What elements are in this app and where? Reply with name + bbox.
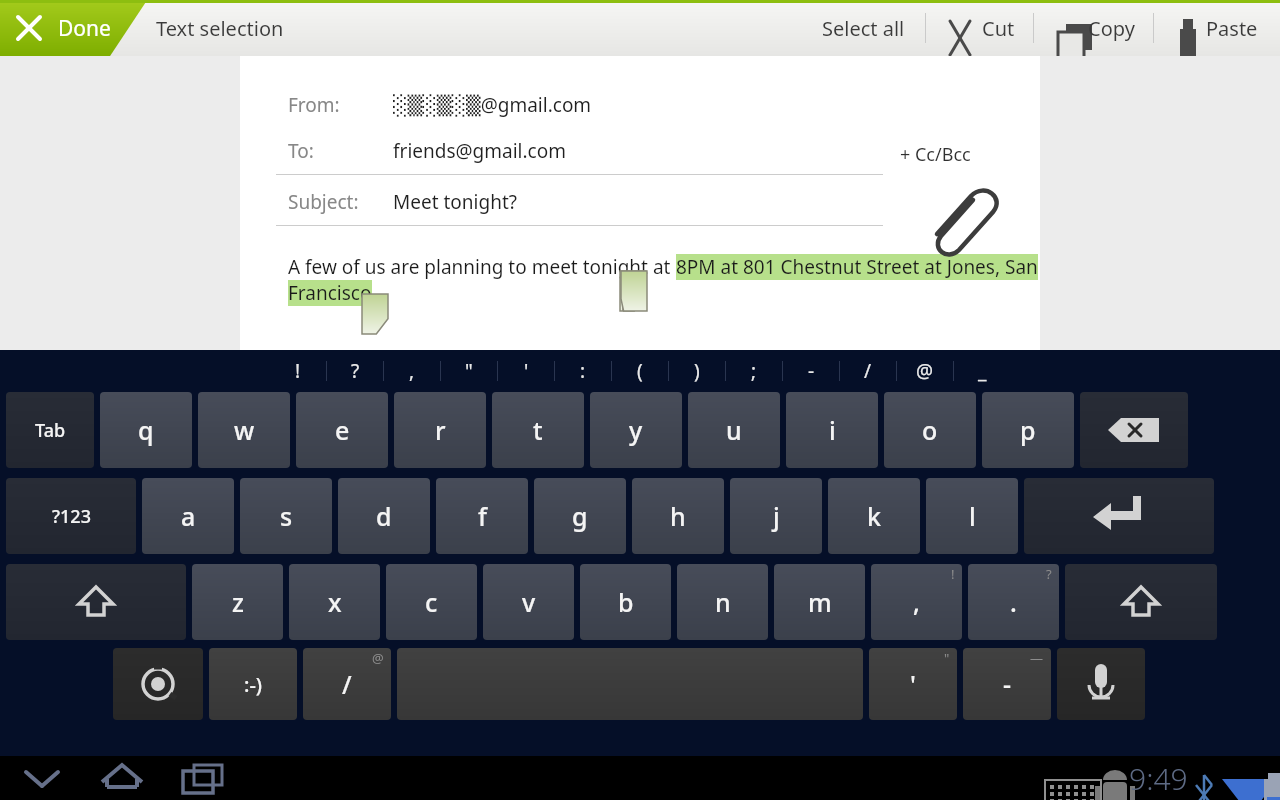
other: Keyboard [1043, 766, 1069, 792]
staticText: n [715, 585, 731, 619]
button[interactable]: ( [612, 350, 668, 392]
staticText: ? [351, 358, 360, 384]
button[interactable]: Space [397, 648, 863, 720]
staticText: Tab [35, 418, 66, 443]
button[interactable]: e [296, 392, 388, 468]
staticText: + Cc/Bcc [900, 142, 971, 167]
button[interactable]: :-) [209, 648, 297, 720]
staticText: To: [288, 138, 393, 164]
button[interactable]: Enter [1024, 478, 1214, 554]
button[interactable]: ?123 [6, 478, 136, 554]
button[interactable]: r [394, 392, 486, 468]
button[interactable]: " [869, 648, 957, 720]
staticText: f [478, 499, 487, 533]
button[interactable]: c [386, 564, 477, 640]
staticText: Francisco [288, 280, 372, 306]
button[interactable]: ? [968, 564, 1059, 640]
button[interactable]: y [590, 392, 682, 468]
staticText: x [328, 585, 342, 619]
staticText: , [409, 358, 415, 384]
button[interactable]: Input settings [113, 648, 203, 720]
staticText: :-) [244, 671, 263, 698]
button[interactable]: g [534, 478, 626, 554]
staticText: o [922, 413, 938, 447]
button[interactable]: Back [14, 756, 70, 800]
button[interactable]: Done [0, 0, 145, 56]
button[interactable]: , [384, 350, 440, 392]
button[interactable]: x [289, 564, 380, 640]
button[interactable]: Shift [1065, 564, 1217, 640]
button[interactable]: ! [871, 564, 962, 640]
button[interactable]: Shift [6, 564, 186, 640]
button[interactable]: Recent apps [174, 756, 230, 800]
button[interactable]: ! [270, 350, 326, 392]
button[interactable]: ? [327, 350, 383, 392]
button[interactable]: o [884, 392, 976, 468]
button[interactable]: w [198, 392, 290, 468]
staticText: Paste [1206, 15, 1258, 42]
staticText: — [1030, 649, 1044, 667]
button[interactable]: " [441, 350, 497, 392]
button[interactable]: z [192, 564, 283, 640]
button[interactable]: — [963, 648, 1051, 720]
button[interactable]: : [555, 350, 611, 392]
button[interactable]: / [840, 350, 896, 392]
button[interactable]: Paste [1154, 0, 1280, 56]
staticText: u [726, 413, 742, 447]
button[interactable]: n [677, 564, 768, 640]
button[interactable]: Attach file [915, 174, 961, 220]
button[interactable]: p [982, 392, 1074, 468]
button[interactable]: k [828, 478, 920, 554]
staticText: e [335, 413, 350, 447]
button[interactable]: i [786, 392, 878, 468]
button[interactable]: - [783, 350, 839, 392]
button[interactable]: _ [954, 350, 1010, 392]
button[interactable]: Copy [1034, 0, 1153, 56]
button[interactable]: ) [669, 350, 725, 392]
button[interactable]: Tab [6, 392, 94, 468]
staticText: Text selection [156, 15, 284, 42]
staticText: 9:49 [1129, 758, 1188, 799]
staticText: p [1020, 413, 1036, 447]
button[interactable]: @ [303, 648, 391, 720]
button[interactable]: Cut [926, 0, 1033, 56]
staticText: Done [58, 14, 111, 43]
staticText: c [425, 585, 438, 619]
staticText: ! [951, 565, 955, 583]
button[interactable]: Voice input [1057, 648, 1145, 720]
staticText: 8PM at 801 Chestnut Street at Jones, San [676, 254, 1038, 280]
button[interactable]: ' [498, 350, 554, 392]
staticText: ) [694, 358, 700, 384]
staticText: a [181, 499, 196, 533]
button[interactable]: h [632, 478, 724, 554]
staticText: v [522, 585, 536, 619]
button[interactable]: + Cc/Bcc [900, 134, 971, 174]
staticText: k [867, 499, 881, 533]
button[interactable]: u [688, 392, 780, 468]
button[interactable]: m [774, 564, 865, 640]
button[interactable]: a [142, 478, 234, 554]
button[interactable]: Home [94, 756, 150, 800]
button[interactable]: q [100, 392, 192, 468]
staticText: m [808, 585, 832, 619]
staticText: t [533, 413, 543, 447]
button[interactable]: f [436, 478, 528, 554]
button[interactable]: d [338, 478, 430, 554]
button[interactable]: l [926, 478, 1018, 554]
button[interactable]: t [492, 392, 584, 468]
button[interactable]: s [240, 478, 332, 554]
staticText: d [376, 499, 392, 533]
button[interactable]: Backspace [1080, 392, 1188, 468]
button[interactable]: Select all [802, 0, 925, 56]
button[interactable]: ; [726, 350, 782, 392]
staticText: @ [372, 649, 384, 667]
staticText: ?123 [52, 504, 91, 529]
button[interactable]: b [580, 564, 671, 640]
button[interactable]: @ [897, 350, 953, 392]
button[interactable]: v [483, 564, 574, 640]
staticText: h [670, 499, 686, 533]
staticText: Select all [822, 15, 905, 42]
staticText: ( [637, 358, 643, 384]
button[interactable]: j [730, 478, 822, 554]
staticText: / [864, 358, 872, 384]
